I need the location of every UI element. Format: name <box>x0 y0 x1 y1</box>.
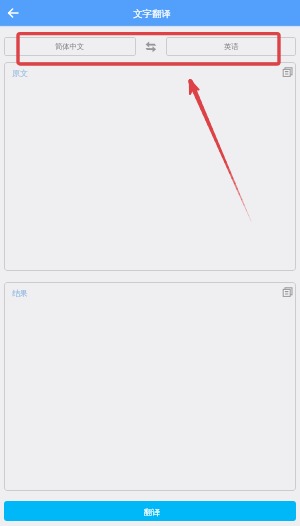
staticText: 简体中文 <box>55 42 85 51</box>
button[interactable]: 翻译 <box>4 501 296 521</box>
button[interactable]: 简体中文 <box>4 37 136 56</box>
staticText: 英语 <box>224 42 239 51</box>
button[interactable]: 英语 <box>166 37 296 56</box>
button[interactable]: Swap languages <box>136 37 166 56</box>
button[interactable]: Copy text <box>281 286 293 298</box>
staticText: 原文 <box>12 68 28 78</box>
button[interactable]: Copy text <box>281 66 293 78</box>
staticText: 文字翻译 <box>133 8 171 20</box>
button[interactable]: Back <box>4 4 21 21</box>
staticText: 结果 <box>12 288 28 298</box>
staticText: 翻译 <box>144 507 160 517</box>
